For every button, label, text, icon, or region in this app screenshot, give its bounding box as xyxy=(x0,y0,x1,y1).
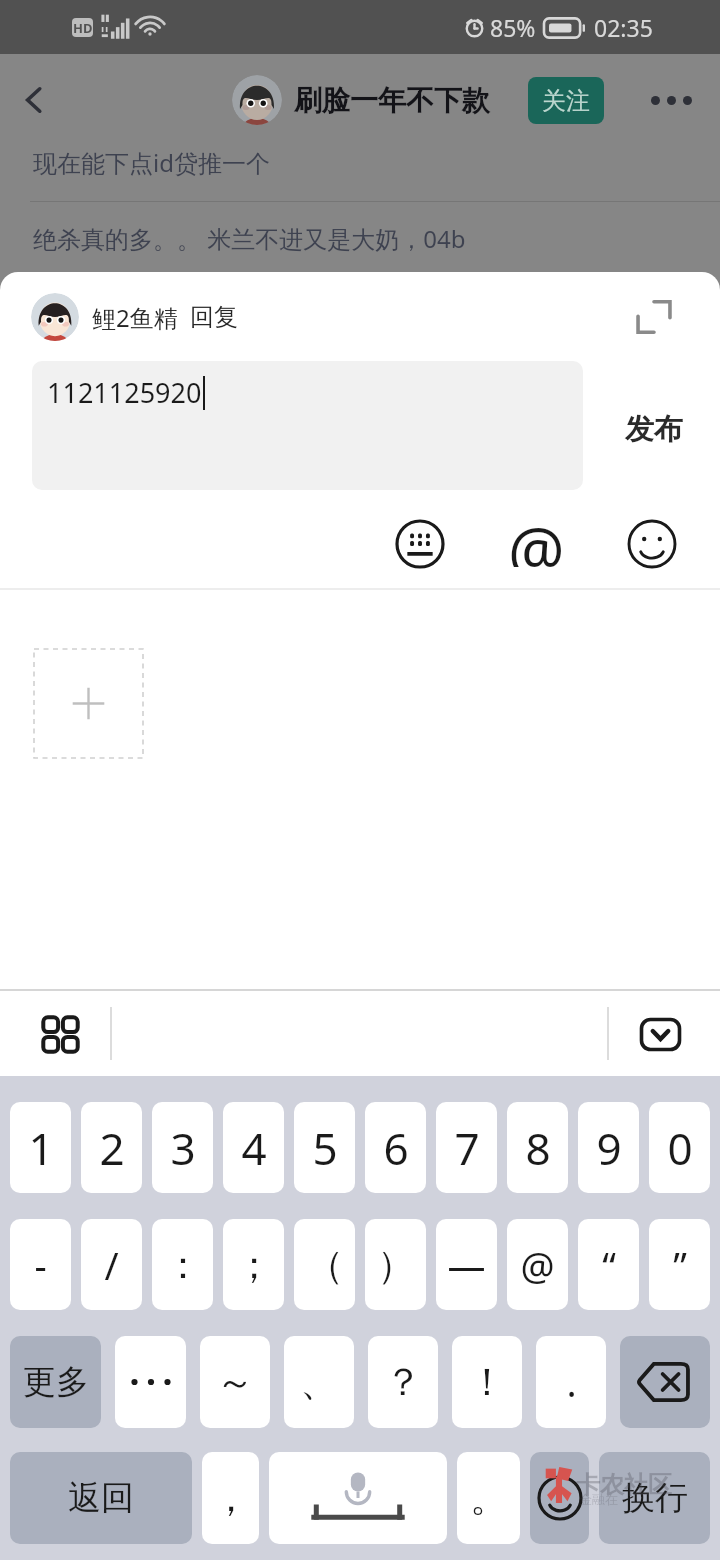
button[interactable]: 1121125920 xyxy=(32,361,583,490)
button[interactable]: 0 xyxy=(649,1102,710,1193)
button[interactable]: . xyxy=(536,1336,606,1428)
staticText: 绝杀真的多。。 米兰不进又是大奶，04b xyxy=(33,222,466,255)
button[interactable]: 关注 xyxy=(528,77,604,124)
staticText: — xyxy=(447,1239,486,1291)
staticText: 1 xyxy=(28,1118,54,1178)
button[interactable]: 8 xyxy=(507,1102,568,1193)
button[interactable]: Emoji xyxy=(622,514,682,574)
staticText: 更多 xyxy=(23,1361,89,1403)
staticText: 换行 xyxy=(622,1477,688,1519)
staticText: 5 xyxy=(312,1118,338,1178)
button[interactable]: 。 xyxy=(457,1452,520,1544)
staticText: 3 xyxy=(170,1118,196,1178)
staticText: 7 xyxy=(454,1118,480,1178)
button[interactable]: 9 xyxy=(578,1102,639,1193)
staticText: 关注 xyxy=(542,86,590,116)
staticText: 。 xyxy=(470,1474,508,1522)
button[interactable]: Back xyxy=(6,72,62,128)
staticText: @ xyxy=(508,507,565,567)
button[interactable]: （ xyxy=(294,1219,355,1310)
button[interactable]: / xyxy=(81,1219,142,1310)
staticText: 回复 xyxy=(190,302,238,332)
button[interactable]: @ xyxy=(507,1219,568,1310)
button[interactable]: Mention someone xyxy=(506,514,566,574)
button[interactable]: Expand xyxy=(625,288,683,346)
staticText: 02:35 xyxy=(594,12,653,43)
staticText: ！ xyxy=(468,1358,506,1406)
button[interactable]: Backspace xyxy=(620,1336,710,1428)
staticText: ” xyxy=(673,1239,687,1291)
staticText: ～ xyxy=(216,1358,254,1406)
button[interactable]: ， xyxy=(202,1452,259,1544)
button[interactable]: 5 xyxy=(294,1102,355,1193)
staticText: 现在能下点id贷推一个 xyxy=(33,146,270,178)
staticText: 4 xyxy=(241,1118,267,1178)
staticText: ； xyxy=(235,1241,273,1289)
button[interactable]: 2 xyxy=(81,1102,142,1193)
staticText: 发布 xyxy=(625,411,683,448)
staticText: 8 xyxy=(525,1118,551,1178)
button[interactable]: 4 xyxy=(223,1102,284,1193)
button[interactable]: 7 xyxy=(436,1102,497,1193)
staticText: - xyxy=(34,1239,47,1291)
staticText: 1121125920 xyxy=(47,374,202,411)
button[interactable]: Emoji xyxy=(530,1452,589,1544)
other: Space xyxy=(293,1466,423,1530)
button[interactable]: Ellipsis xyxy=(115,1336,186,1428)
staticText: 6 xyxy=(383,1118,409,1178)
button[interactable]: 发布 xyxy=(612,405,696,453)
button[interactable]: Add image xyxy=(34,649,143,758)
button[interactable]: 1 xyxy=(10,1102,71,1193)
button[interactable]: More options xyxy=(642,71,700,129)
staticText: 金融在 xyxy=(579,1491,618,1507)
button[interactable]: ～ xyxy=(200,1336,270,1428)
staticText: ？ xyxy=(384,1358,422,1406)
button[interactable]: ： xyxy=(152,1219,213,1310)
staticText: 、 xyxy=(300,1358,338,1406)
other: Backspace xyxy=(637,1361,693,1403)
staticText: / xyxy=(104,1239,119,1291)
staticText: 0 xyxy=(667,1118,693,1178)
staticText: 卡农社区 xyxy=(576,1470,672,1500)
staticText: 2 xyxy=(99,1118,125,1178)
staticText: 85% xyxy=(490,12,536,43)
staticText: “ xyxy=(602,1239,616,1291)
button[interactable]: 换行 xyxy=(599,1452,710,1544)
staticText: 9 xyxy=(596,1118,622,1178)
button[interactable]: “ xyxy=(578,1219,639,1310)
staticText: ） xyxy=(377,1241,415,1289)
staticText: 返回 xyxy=(68,1477,134,1519)
button[interactable]: 3 xyxy=(152,1102,213,1193)
button[interactable]: 6 xyxy=(365,1102,426,1193)
button[interactable]: ！ xyxy=(452,1336,522,1428)
button[interactable]: 更多 xyxy=(10,1336,101,1428)
button[interactable]: — xyxy=(436,1219,497,1310)
button[interactable]: Keyboard xyxy=(390,514,450,574)
staticText: @ xyxy=(520,1239,555,1291)
button[interactable]: - xyxy=(10,1219,71,1310)
staticText: 鲤2鱼精 xyxy=(92,301,178,334)
staticText: （ xyxy=(306,1241,344,1289)
button[interactable]: Hide keyboard xyxy=(630,1008,690,1060)
button[interactable]: ； xyxy=(223,1219,284,1310)
button[interactable]: ？ xyxy=(368,1336,438,1428)
other: Ellipsis xyxy=(131,1376,171,1388)
button[interactable]: 返回 xyxy=(10,1452,192,1544)
button[interactable]: ） xyxy=(365,1219,426,1310)
staticText: ： xyxy=(164,1241,202,1289)
button[interactable]: 、 xyxy=(284,1336,354,1428)
staticText: ， xyxy=(212,1474,250,1522)
staticText: HD xyxy=(73,19,93,37)
button[interactable]: Space xyxy=(269,1452,447,1544)
staticText: 刷脸一年不下款 xyxy=(294,83,490,118)
button[interactable]: Keyboard layouts xyxy=(30,1004,90,1064)
other: Emoji xyxy=(537,1475,583,1521)
button[interactable]: ” xyxy=(649,1219,710,1310)
staticText: . xyxy=(566,1356,577,1408)
